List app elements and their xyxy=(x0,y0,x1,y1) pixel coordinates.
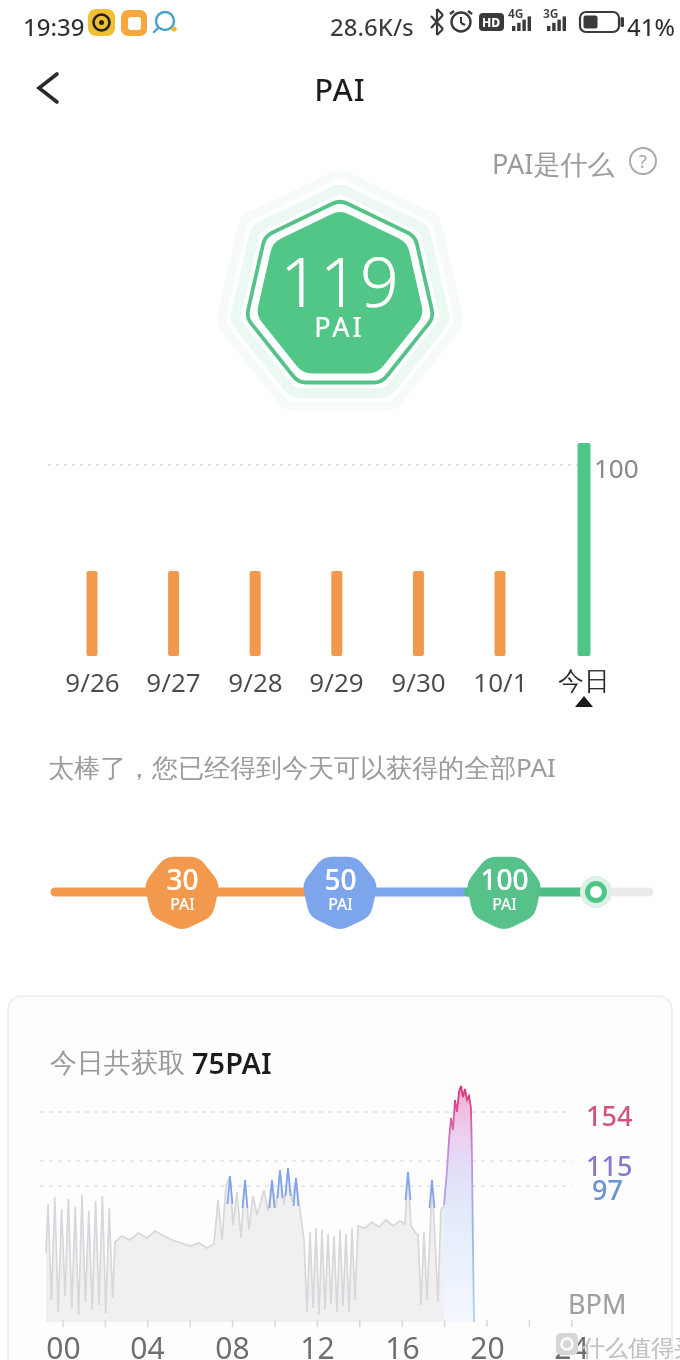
staticText: 9/30 xyxy=(391,664,446,699)
staticText: 115 xyxy=(586,1147,633,1184)
staticText: 41% xyxy=(627,10,675,43)
staticText: 3G xyxy=(543,5,559,21)
staticText: 04 xyxy=(130,1327,165,1360)
staticText: 19:39 xyxy=(23,10,85,43)
staticText: 08 xyxy=(215,1327,250,1360)
staticText: PAI xyxy=(328,893,353,915)
staticText: 10/1 xyxy=(473,664,528,699)
staticText: 16 xyxy=(385,1327,420,1360)
staticText: 28.6K/s xyxy=(330,10,414,43)
staticText: 什么值得买 xyxy=(582,1334,680,1360)
staticText: 9/26 xyxy=(65,664,120,699)
staticText: 119 xyxy=(280,234,400,327)
staticText: BPM xyxy=(568,1285,627,1322)
staticText: 9/27 xyxy=(146,664,201,699)
staticText: 今日共获取 xyxy=(50,1046,185,1080)
staticText: 154 xyxy=(586,1097,633,1134)
staticText: 50 xyxy=(324,860,357,898)
staticText: PAI xyxy=(170,893,195,915)
staticText: 75PAI xyxy=(192,1043,272,1082)
staticText: 97 xyxy=(592,1171,623,1208)
staticText: 太棒了，您已经得到今天可以获得的全部PAI xyxy=(48,749,556,785)
staticText: 30 xyxy=(166,860,199,898)
staticText: PAI是什么 xyxy=(492,145,615,182)
staticText: ? xyxy=(639,149,647,174)
staticText: PAI xyxy=(314,68,366,110)
staticText: 9/28 xyxy=(228,664,283,699)
staticText: 100 xyxy=(480,860,529,898)
staticText: 9/29 xyxy=(309,664,364,699)
staticText: 24 xyxy=(554,1327,589,1360)
staticText: 4G xyxy=(508,5,524,21)
staticText: PAI xyxy=(314,308,365,345)
staticText: HD xyxy=(482,14,500,30)
staticText: 20 xyxy=(470,1327,505,1360)
staticText: 12 xyxy=(300,1327,335,1360)
staticText: 今日 xyxy=(558,665,610,698)
staticText: 100 xyxy=(594,450,639,485)
staticText: PAI xyxy=(492,893,517,915)
staticText: 00 xyxy=(46,1327,81,1360)
